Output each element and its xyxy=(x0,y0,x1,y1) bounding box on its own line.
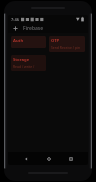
button[interactable]: OTP xyxy=(49,36,85,52)
staticText: Auth xyxy=(13,38,24,44)
button[interactable]: Recents xyxy=(65,153,76,164)
button[interactable]: Back xyxy=(20,153,31,164)
staticText: Storage xyxy=(13,57,30,63)
staticText: Send Receive / pin auth / user xyxy=(51,45,83,50)
staticText: 7:46 xyxy=(11,17,19,22)
staticText: OTP xyxy=(51,38,60,44)
staticText: Firebase xyxy=(23,25,44,32)
button[interactable]: Add xyxy=(11,24,19,32)
button[interactable]: Storage xyxy=(11,55,46,71)
button[interactable]: Auth xyxy=(11,36,46,48)
button[interactable]: Home xyxy=(43,153,54,164)
staticText: Read / write / upload / image xyxy=(13,64,44,69)
